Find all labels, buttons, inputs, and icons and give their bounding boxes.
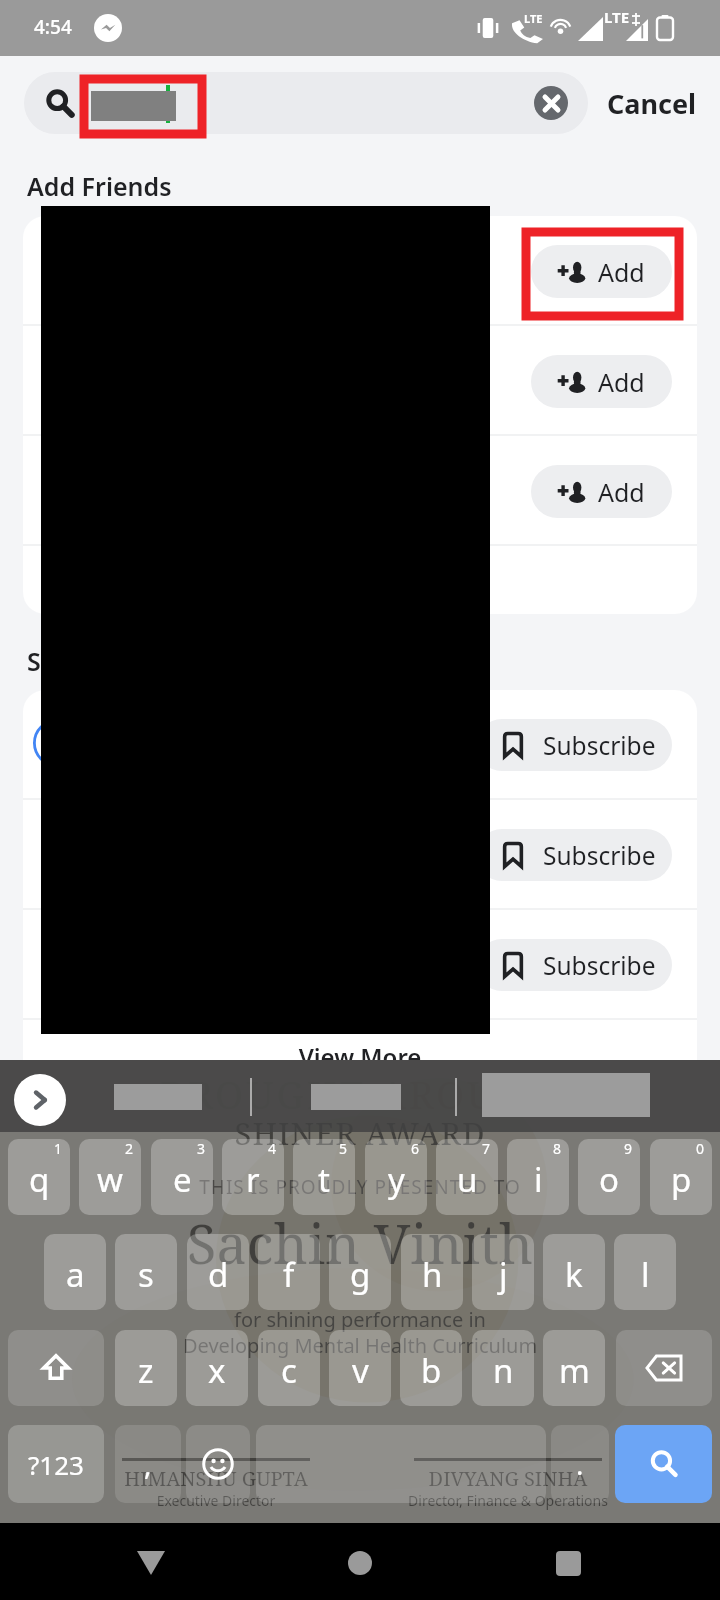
button[interactable]: Comma [115, 1425, 181, 1503]
button[interactable]: w [79, 1139, 141, 1215]
staticText: HIMANSHU GUPTA [112, 1465, 320, 1492]
staticText: n [493, 1348, 514, 1393]
staticText: i [534, 1157, 543, 1202]
staticText: g [350, 1252, 371, 1297]
staticText: Sachin Vinith [0, 1206, 720, 1280]
button[interactable]: u [436, 1139, 498, 1215]
staticText: 8 [553, 1139, 562, 1158]
button[interactable]: n [472, 1330, 534, 1406]
staticText: Add Friends [27, 169, 172, 203]
staticText: 4 [268, 1139, 277, 1158]
button[interactable]: Add [23, 436, 697, 546]
button[interactable]: j [472, 1234, 534, 1310]
staticText: a [66, 1252, 85, 1297]
button[interactable]: Search [615, 1425, 712, 1503]
button[interactable]: Subscribe [476, 829, 672, 881]
staticText: . [576, 1445, 584, 1483]
button[interactable]: a [44, 1234, 106, 1310]
staticText: SHINER AWARD [0, 1112, 720, 1154]
button[interactable]: v [329, 1330, 391, 1406]
button[interactable]: Subscribe [23, 690, 697, 800]
button[interactable]: t [293, 1139, 355, 1215]
button[interactable]: m [543, 1330, 605, 1406]
button[interactable]: l [614, 1234, 676, 1310]
button[interactable]: Add [531, 465, 672, 518]
button[interactable]: Space [256, 1425, 546, 1503]
button[interactable]: Add [23, 326, 697, 436]
button[interactable]: p [650, 1139, 712, 1215]
button[interactable]: h [401, 1234, 463, 1310]
staticText: LTE [524, 11, 543, 26]
button[interactable]: i [507, 1139, 569, 1215]
button[interactable]: Emoji [186, 1425, 250, 1503]
staticText: v [352, 1348, 369, 1393]
staticText: LTE [604, 7, 630, 27]
button[interactable]: r [222, 1139, 284, 1215]
staticText: r [246, 1157, 260, 1202]
button[interactable]: Shift [8, 1330, 104, 1406]
button[interactable]: Cancel [600, 72, 704, 134]
button[interactable]: b [400, 1330, 462, 1406]
staticText: s [138, 1252, 154, 1297]
button[interactable]: y [365, 1139, 427, 1215]
staticText: p [671, 1157, 692, 1202]
staticText: Subscribe [543, 839, 656, 872]
button[interactable]: Subscribe [23, 910, 697, 1020]
button[interactable]: Add [531, 355, 672, 408]
button[interactable]: Home [326, 1529, 394, 1597]
staticText: Cancel [607, 85, 697, 122]
staticText: y [388, 1157, 405, 1202]
button[interactable]: Add [531, 245, 672, 298]
button[interactable]: More suggestions [14, 1074, 66, 1126]
button[interactable] [23, 1020, 697, 1090]
staticText: Subscribe [543, 729, 656, 762]
staticText: q [29, 1157, 50, 1202]
button[interactable]: ?123 [8, 1425, 104, 1503]
staticText: d [208, 1252, 229, 1297]
button[interactable]: Backspace [616, 1330, 712, 1406]
staticText: h [422, 1252, 443, 1297]
staticText: z [138, 1348, 154, 1393]
staticText: t [318, 1157, 330, 1202]
button[interactable] [24, 72, 588, 134]
staticText: l [641, 1252, 650, 1297]
button[interactable]: Clear search [534, 86, 568, 120]
button[interactable]: Back [117, 1529, 185, 1597]
button[interactable]: Subscribe [23, 800, 697, 910]
button[interactable]: View More [0, 1038, 720, 1075]
staticText: , [144, 1445, 152, 1483]
button[interactable]: Period [551, 1425, 609, 1503]
button[interactable]: c [258, 1330, 320, 1406]
staticText: m [559, 1348, 590, 1393]
button[interactable]: o [578, 1139, 640, 1215]
staticText: x [208, 1348, 226, 1393]
button[interactable]: Add [23, 216, 697, 326]
button[interactable]: s [115, 1234, 177, 1310]
staticText: Subscribe [543, 949, 656, 982]
staticText: Developing Mental Health Curriculum [0, 1332, 720, 1359]
staticText: f [283, 1252, 295, 1297]
staticText: b [421, 1348, 442, 1393]
button[interactable]: f [258, 1234, 320, 1310]
button[interactable]: x [186, 1330, 248, 1406]
button[interactable]: d [187, 1234, 249, 1310]
button[interactable]: Subscribe [476, 719, 672, 771]
staticText: 2 [125, 1139, 134, 1158]
button[interactable] [23, 546, 697, 614]
staticText: 9 [624, 1139, 633, 1158]
staticText: Add [598, 255, 645, 289]
button[interactable]: e [151, 1139, 213, 1215]
button[interactable]: q [8, 1139, 70, 1215]
staticText: BROUGHT AROUND [0, 1068, 720, 1120]
staticText: k [565, 1252, 583, 1297]
staticText: THIS IS PROUDLY PRESENTED TO [0, 1174, 720, 1200]
button[interactable]: z [115, 1330, 177, 1406]
staticText: c [281, 1348, 297, 1393]
button[interactable]: Subscribe [476, 939, 672, 991]
button[interactable]: k [543, 1234, 605, 1310]
staticText: Suggested Channels [27, 644, 275, 678]
button[interactable]: Recents [534, 1529, 602, 1597]
staticText: Director, Finance & Operations [404, 1491, 612, 1510]
staticText: 3 [197, 1139, 206, 1158]
button[interactable]: g [329, 1234, 391, 1310]
